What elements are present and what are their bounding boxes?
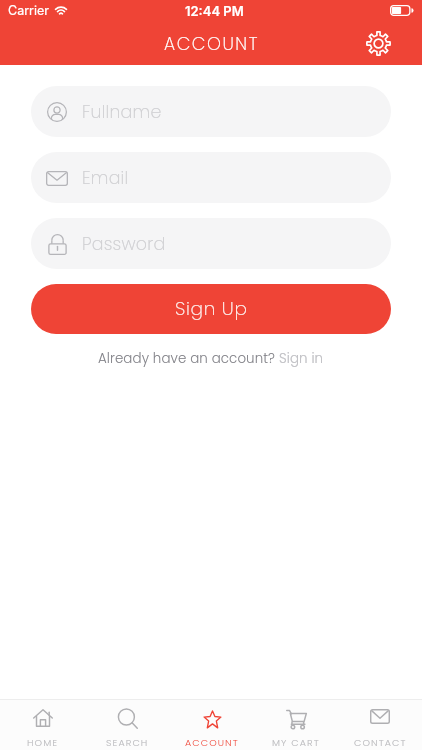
button[interactable]: Password: [31, 218, 391, 269]
staticText: Fullname: [82, 100, 162, 124]
staticText: 12:44 PM: [185, 3, 244, 19]
button[interactable]: SEARCH: [85, 699, 170, 750]
button[interactable]: Sign in: [279, 349, 324, 368]
staticText: Sign Up: [175, 296, 248, 322]
staticText: Email: [82, 166, 129, 190]
button[interactable]: CONTACT: [338, 699, 422, 750]
button[interactable]: MY CART: [254, 699, 338, 750]
button[interactable]: Email: [31, 152, 391, 203]
staticText: MY CART: [272, 736, 320, 749]
staticText: HOME: [27, 736, 59, 749]
staticText: Password: [82, 232, 166, 256]
staticText: ACCOUNT: [164, 32, 260, 57]
button[interactable]: Settings: [365, 30, 392, 57]
button[interactable]: Sign Up: [31, 284, 391, 334]
button[interactable]: HOME: [0, 699, 85, 750]
staticText: SEARCH: [106, 736, 149, 749]
staticText: Carrier: [8, 3, 49, 18]
button[interactable]: Fullname: [31, 86, 391, 137]
button[interactable]: ACCOUNT: [170, 699, 254, 750]
staticText: Sign in: [279, 349, 324, 368]
staticText: Already have an account?: [98, 349, 279, 368]
staticText: CONTACT: [354, 736, 407, 749]
staticText: ACCOUNT: [185, 736, 239, 749]
